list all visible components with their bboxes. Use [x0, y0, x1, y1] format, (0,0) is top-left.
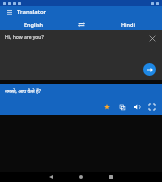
button[interactable]: Full screen — [147, 102, 157, 112]
button[interactable]: Save to favorites — [102, 102, 112, 112]
button[interactable]: Back — [44, 172, 58, 182]
button[interactable]: नमस्ते, आप कैसे हैं? — [0, 84, 162, 115]
button[interactable]: Clear text — [148, 34, 157, 43]
staticText: नमस्ते, आप कैसे हैं? — [5, 88, 41, 95]
button[interactable]: Open navigation menu — [4, 7, 14, 17]
button[interactable]: Home — [74, 172, 88, 182]
staticText: Hi, how are you? — [5, 34, 44, 41]
button[interactable]: Listen — [132, 102, 142, 112]
button[interactable]: Translate — [143, 63, 156, 76]
button[interactable]: Copy translation — [117, 102, 127, 112]
button[interactable]: Recent apps — [104, 172, 118, 182]
button[interactable]: Swap languages — [68, 18, 94, 30]
staticText: English — [24, 21, 44, 28]
button[interactable]: English — [0, 18, 68, 30]
button[interactable]: Hindi — [94, 18, 162, 30]
button[interactable]: Hi, how are you? — [5, 34, 44, 41]
staticText: Translator — [17, 8, 47, 16]
staticText: Hindi — [121, 21, 135, 28]
